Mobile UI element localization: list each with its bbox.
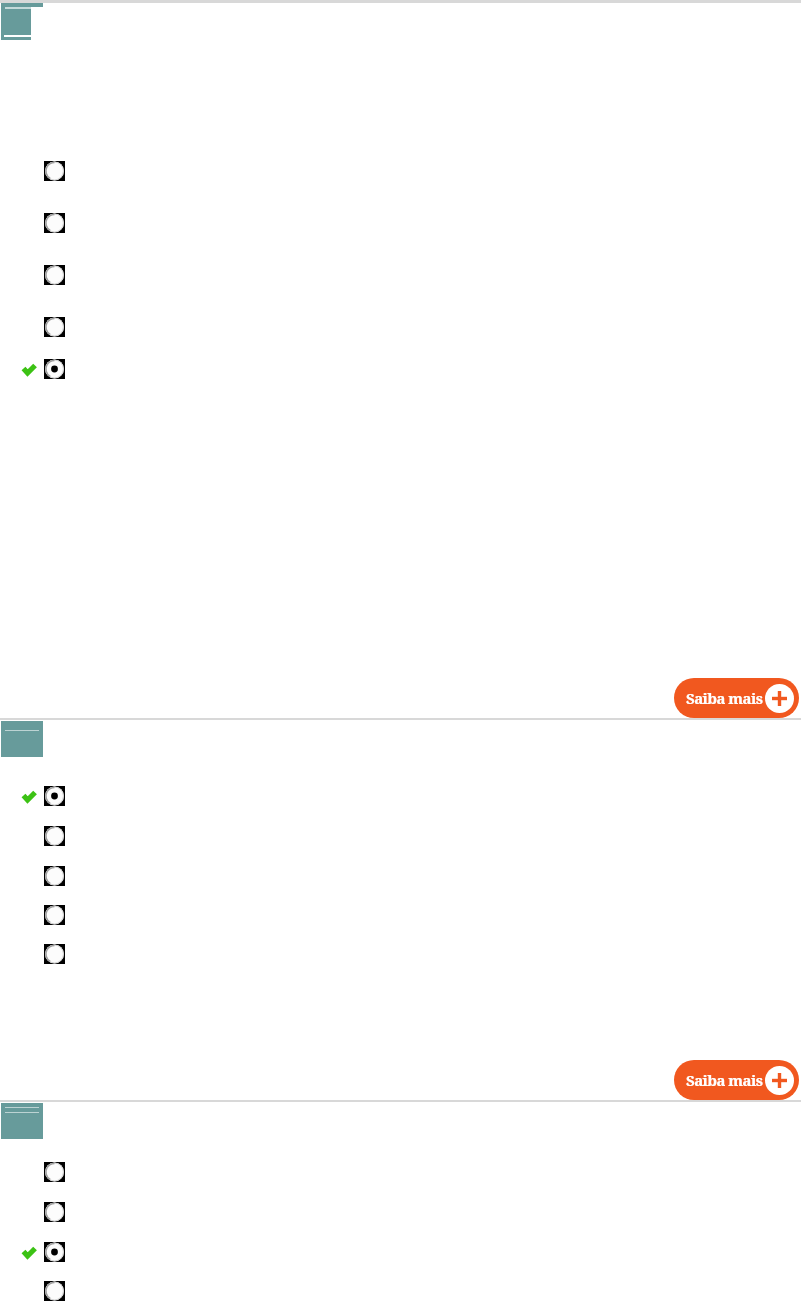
- button[interactable]: Alternativa 4 da pergunta 1: [20, 316, 720, 337]
- button[interactable]: Alternativa 5 da pergunta 1: [20, 358, 720, 379]
- button[interactable]: Alternativa 5 da pergunta 2: [20, 943, 720, 964]
- button[interactable]: Saiba mais: [674, 678, 799, 718]
- button[interactable]: Alternativa 4 da pergunta 2: [20, 904, 720, 925]
- button[interactable]: Alternativa 2 da pergunta 2: [20, 825, 720, 846]
- button[interactable]: Pergunta 1: [1, 3, 43, 36]
- button[interactable]: Alternativa 1 da pergunta 2: [20, 785, 720, 806]
- button[interactable]: Pergunta 2: [1, 721, 43, 757]
- button[interactable]: Alternativa 3 da pergunta 3: [20, 1241, 720, 1262]
- button[interactable]: Alternativa 3 da pergunta 1: [20, 264, 720, 285]
- button[interactable]: Alternativa 3 da pergunta 2: [20, 865, 720, 886]
- staticText: Saiba mais: [686, 1070, 763, 1090]
- button[interactable]: Saiba mais: [674, 1060, 799, 1100]
- button[interactable]: Pergunta 3: [1, 1103, 43, 1139]
- button[interactable]: Alternativa 4 da pergunta 3: [20, 1280, 720, 1301]
- button[interactable]: Alternativa 1 da pergunta 1: [20, 160, 720, 181]
- button[interactable]: Alternativa 1 da pergunta 3: [20, 1161, 720, 1182]
- button[interactable]: Alternativa 2 da pergunta 3: [20, 1201, 720, 1222]
- staticText: Saiba mais: [686, 688, 763, 708]
- button[interactable]: Alternativa 2 da pergunta 1: [20, 212, 720, 233]
